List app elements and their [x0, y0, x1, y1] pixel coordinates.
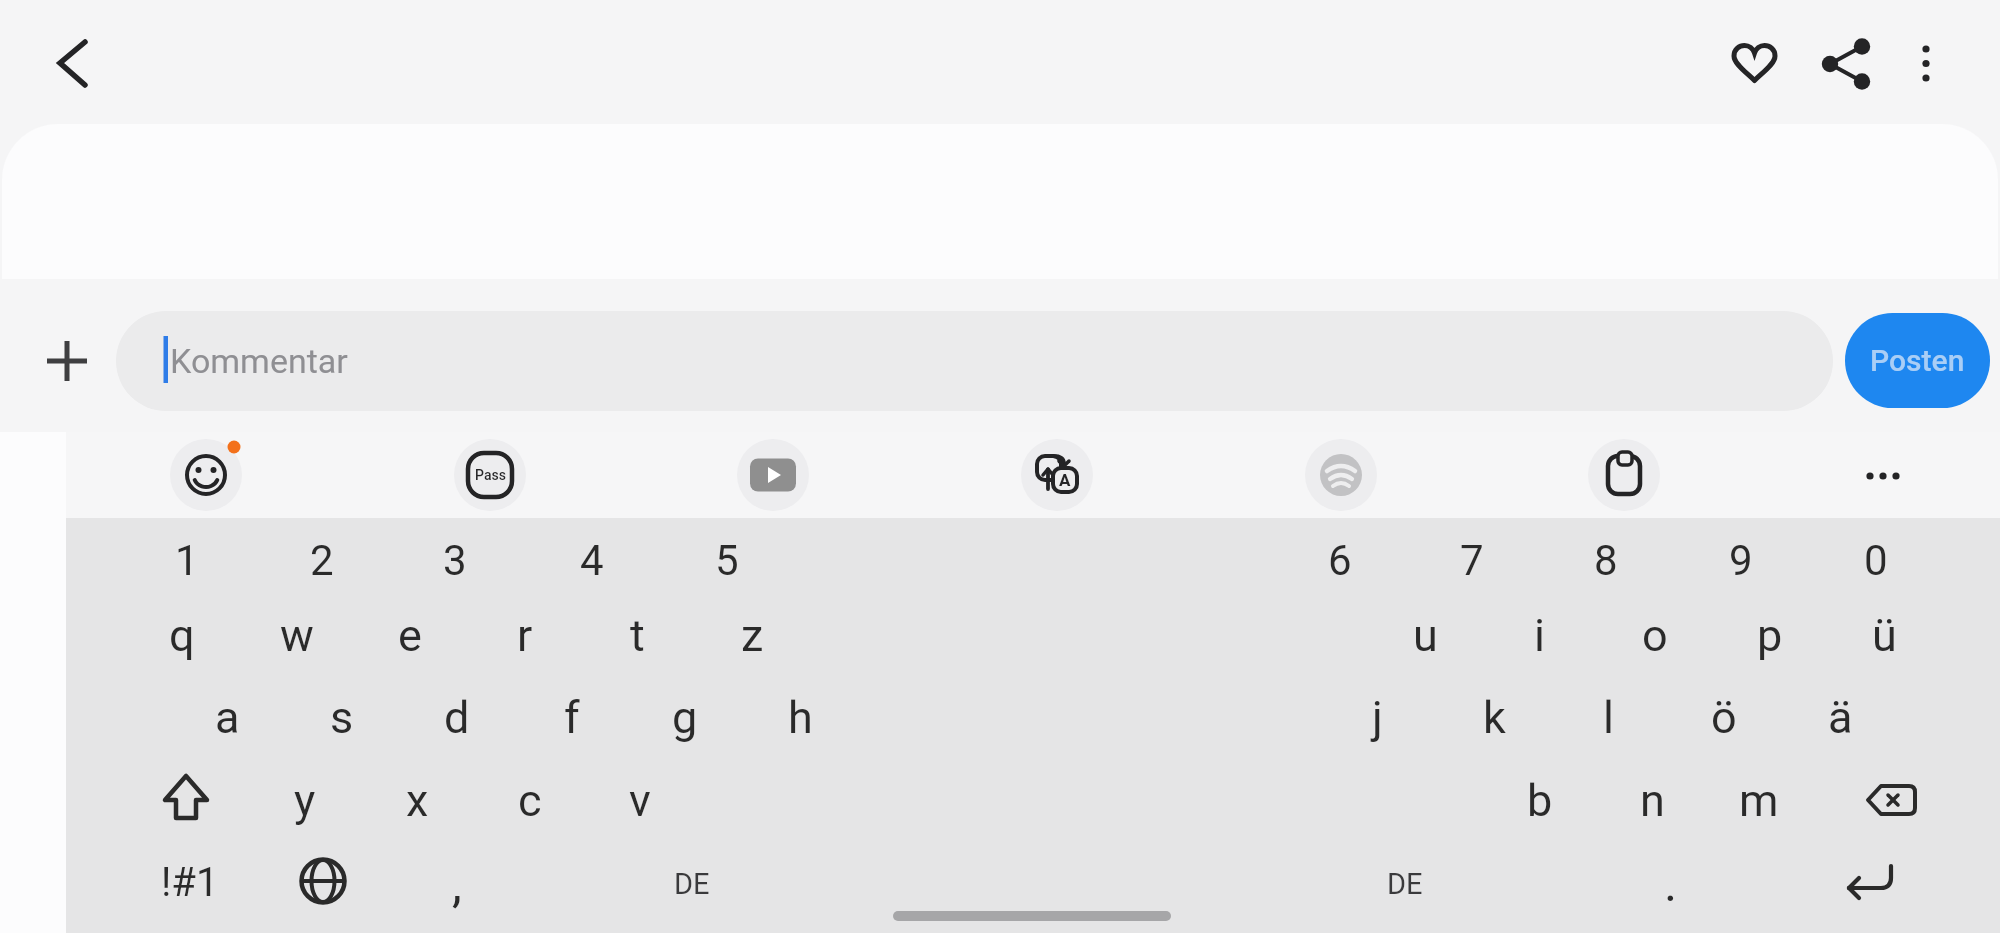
- staticText: t: [630, 609, 645, 662]
- button[interactable]: [46, 36, 102, 92]
- button[interactable]: w: [245, 596, 349, 674]
- button[interactable]: x: [365, 761, 469, 839]
- staticText: 0: [1864, 536, 1888, 585]
- button[interactable]: z: [700, 596, 804, 674]
- button[interactable]: [160, 765, 230, 835]
- button[interactable]: 6: [1288, 521, 1392, 599]
- button[interactable]: 7: [1420, 521, 1524, 599]
- staticText: j: [1372, 691, 1383, 744]
- button[interactable]: [1902, 40, 1950, 88]
- staticText: DE: [1387, 867, 1423, 901]
- staticText: ö: [1711, 691, 1737, 744]
- staticText: ,: [452, 855, 462, 914]
- button[interactable]: ä: [1788, 678, 1892, 756]
- staticText: y: [294, 774, 316, 827]
- button[interactable]: u: [1373, 596, 1477, 674]
- button[interactable]: r: [473, 596, 577, 674]
- button[interactable]: [1730, 40, 1778, 88]
- button[interactable]: [1019, 437, 1095, 513]
- button[interactable]: [735, 437, 811, 513]
- staticText: v: [629, 774, 651, 827]
- button[interactable]: o: [1603, 596, 1707, 674]
- button[interactable]: y: [253, 761, 357, 839]
- button[interactable]: p: [1718, 596, 1822, 674]
- button[interactable]: g: [633, 678, 737, 756]
- button[interactable]: m: [1707, 761, 1811, 839]
- staticText: 4: [580, 536, 604, 585]
- button[interactable]: ö: [1672, 678, 1776, 756]
- staticText: A: [1059, 470, 1071, 490]
- staticText: w: [280, 609, 314, 662]
- button[interactable]: 1: [135, 521, 239, 599]
- staticText: Kommentar: [170, 341, 348, 381]
- staticText: o: [1642, 609, 1668, 662]
- button[interactable]: 8: [1554, 521, 1658, 599]
- button[interactable]: [168, 437, 244, 513]
- staticText: r: [517, 609, 533, 662]
- staticText: q: [169, 609, 195, 662]
- staticText: p: [1757, 609, 1783, 662]
- button[interactable]: 4: [540, 521, 644, 599]
- staticText: 7: [1460, 536, 1484, 585]
- button[interactable]: ü: [1832, 596, 1936, 674]
- button[interactable]: ,: [405, 845, 509, 923]
- staticText: z: [741, 609, 764, 662]
- button[interactable]: [285, 847, 359, 917]
- button[interactable]: 3: [403, 521, 507, 599]
- staticText: x: [406, 774, 429, 827]
- button[interactable]: 5: [675, 521, 779, 599]
- button[interactable]: [880, 905, 1180, 929]
- button[interactable]: [1833, 847, 1907, 917]
- button[interactable]: d: [405, 678, 509, 756]
- button[interactable]: [1822, 40, 1870, 88]
- button[interactable]: [40, 335, 92, 387]
- staticText: d: [444, 691, 470, 744]
- button[interactable]: q: [130, 596, 234, 674]
- button[interactable]: l: [1556, 678, 1660, 756]
- staticText: Pass: [475, 467, 506, 483]
- button[interactable]: e: [358, 596, 462, 674]
- button[interactable]: [1855, 765, 1929, 835]
- staticText: l: [1603, 691, 1614, 744]
- staticText: DE: [674, 867, 710, 901]
- staticText: 3: [443, 536, 467, 585]
- button[interactable]: f: [520, 678, 624, 756]
- button[interactable]: !#1: [138, 843, 242, 921]
- button[interactable]: DE: [1285, 845, 1525, 923]
- staticText: e: [398, 609, 422, 662]
- staticText: f: [564, 691, 580, 744]
- staticText: g: [672, 691, 698, 744]
- staticText: 5: [715, 536, 739, 585]
- staticText: ü: [1872, 609, 1897, 662]
- button[interactable]: n: [1600, 761, 1704, 839]
- button[interactable]: v: [588, 761, 692, 839]
- button[interactable]: [1303, 437, 1379, 513]
- button[interactable]: [1586, 437, 1662, 513]
- button[interactable]: k: [1442, 678, 1546, 756]
- button[interactable]: a: [175, 678, 279, 756]
- staticText: 6: [1328, 536, 1352, 585]
- staticText: u: [1413, 609, 1438, 662]
- staticText: c: [518, 774, 542, 827]
- button[interactable]: 2: [270, 521, 374, 599]
- staticText: .: [1664, 855, 1678, 914]
- button[interactable]: DE: [572, 845, 812, 923]
- button[interactable]: 0: [1824, 521, 1928, 599]
- button[interactable]: j: [1325, 678, 1429, 756]
- staticText: 2: [310, 536, 334, 585]
- button[interactable]: 9: [1689, 521, 1793, 599]
- button[interactable]: [452, 437, 528, 513]
- button[interactable]: b: [1488, 761, 1592, 839]
- button[interactable]: Kommentar: [116, 311, 1833, 411]
- button[interactable]: .: [1619, 845, 1723, 923]
- button[interactable]: i: [1487, 596, 1591, 674]
- button[interactable]: c: [478, 761, 582, 839]
- button[interactable]: [1845, 437, 1921, 513]
- staticText: s: [330, 691, 354, 744]
- staticText: !#1: [161, 859, 219, 906]
- button[interactable]: t: [585, 596, 689, 674]
- button[interactable]: s: [290, 678, 394, 756]
- button[interactable]: h: [748, 678, 852, 756]
- button[interactable]: Posten: [1845, 313, 1990, 408]
- staticText: k: [1483, 691, 1506, 744]
